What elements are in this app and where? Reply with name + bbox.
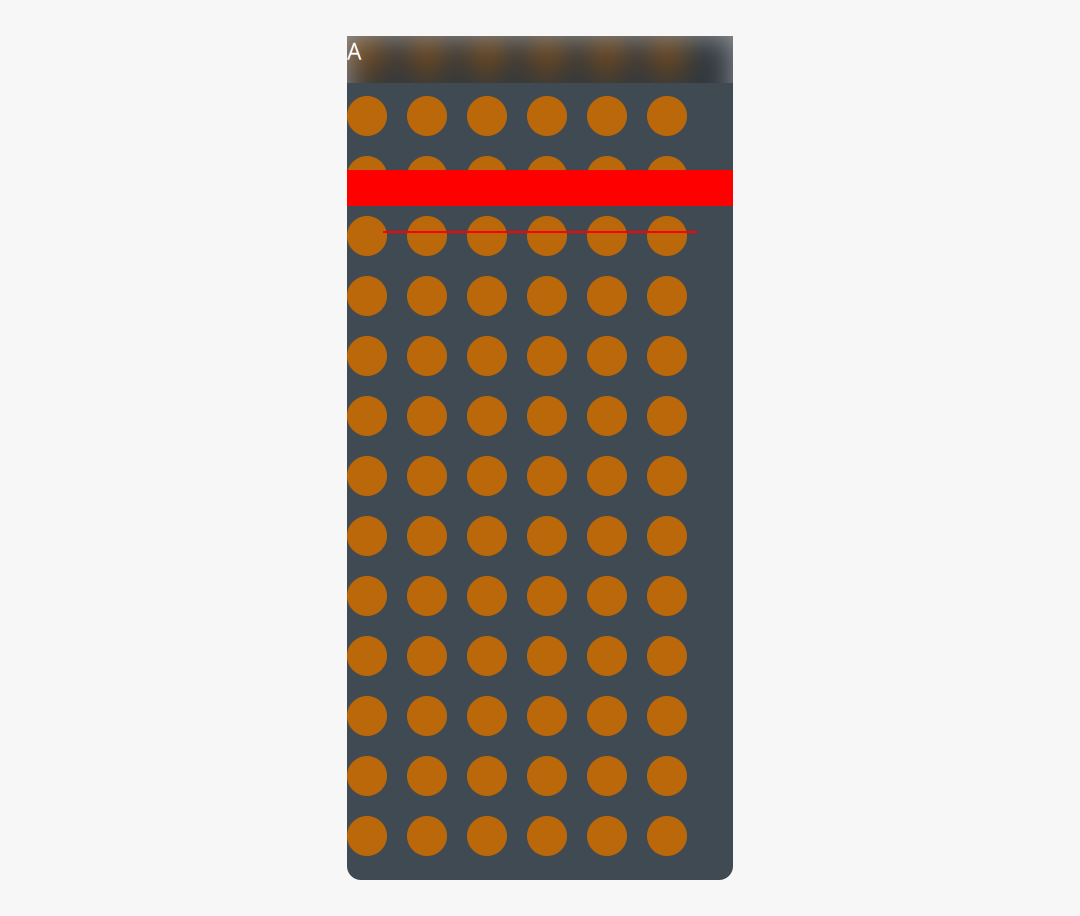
staticText: A [533,44,547,74]
